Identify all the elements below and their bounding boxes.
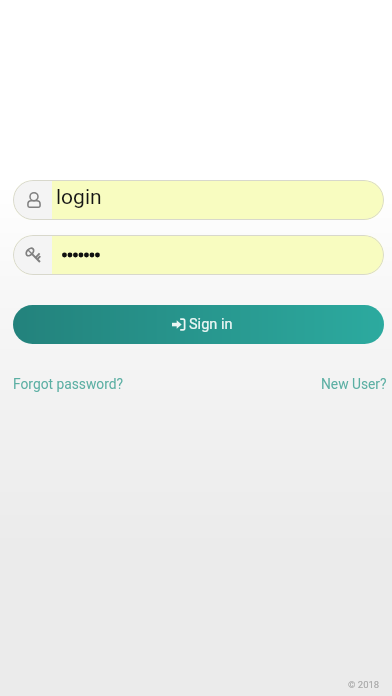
other: Sign in [172, 318, 185, 331]
staticText: Sign in [189, 316, 233, 333]
staticText: New User? [321, 376, 387, 392]
button[interactable]: login [13, 180, 384, 220]
button[interactable]: Forgot password? [0, 374, 128, 394]
button[interactable]: Sign in [13, 305, 384, 344]
button[interactable] [13, 235, 384, 275]
staticText: Forgot password? [13, 376, 124, 392]
staticText: © 2018 [348, 679, 380, 690]
button[interactable]: New User? [317, 374, 392, 394]
staticText: login [56, 185, 102, 210]
